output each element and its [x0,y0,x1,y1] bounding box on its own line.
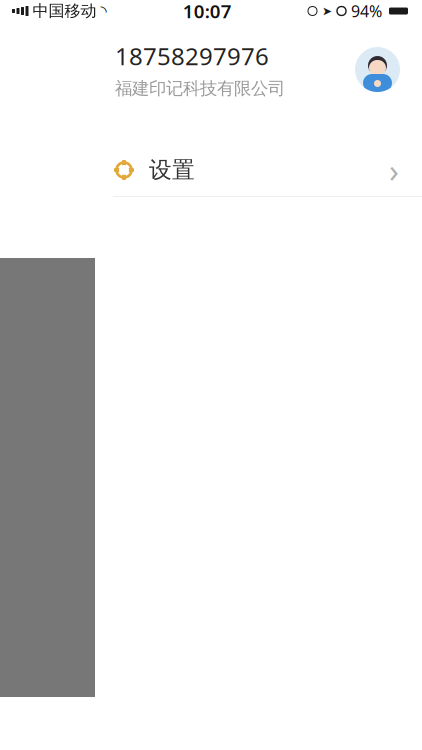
staticText: › [389,149,399,191]
staticText: 94% [351,0,382,22]
staticText: ◝ [100,2,106,20]
staticText: 福建印记科技有限公司 [115,78,285,99]
staticText: 18758297976 [115,40,269,72]
staticText: 设置 [149,156,195,184]
button[interactable]: 设置 [95,144,422,197]
staticText: 10:07 [183,0,232,23]
staticText: ➤ [322,4,332,18]
staticText: 中国移动 [32,1,96,21]
